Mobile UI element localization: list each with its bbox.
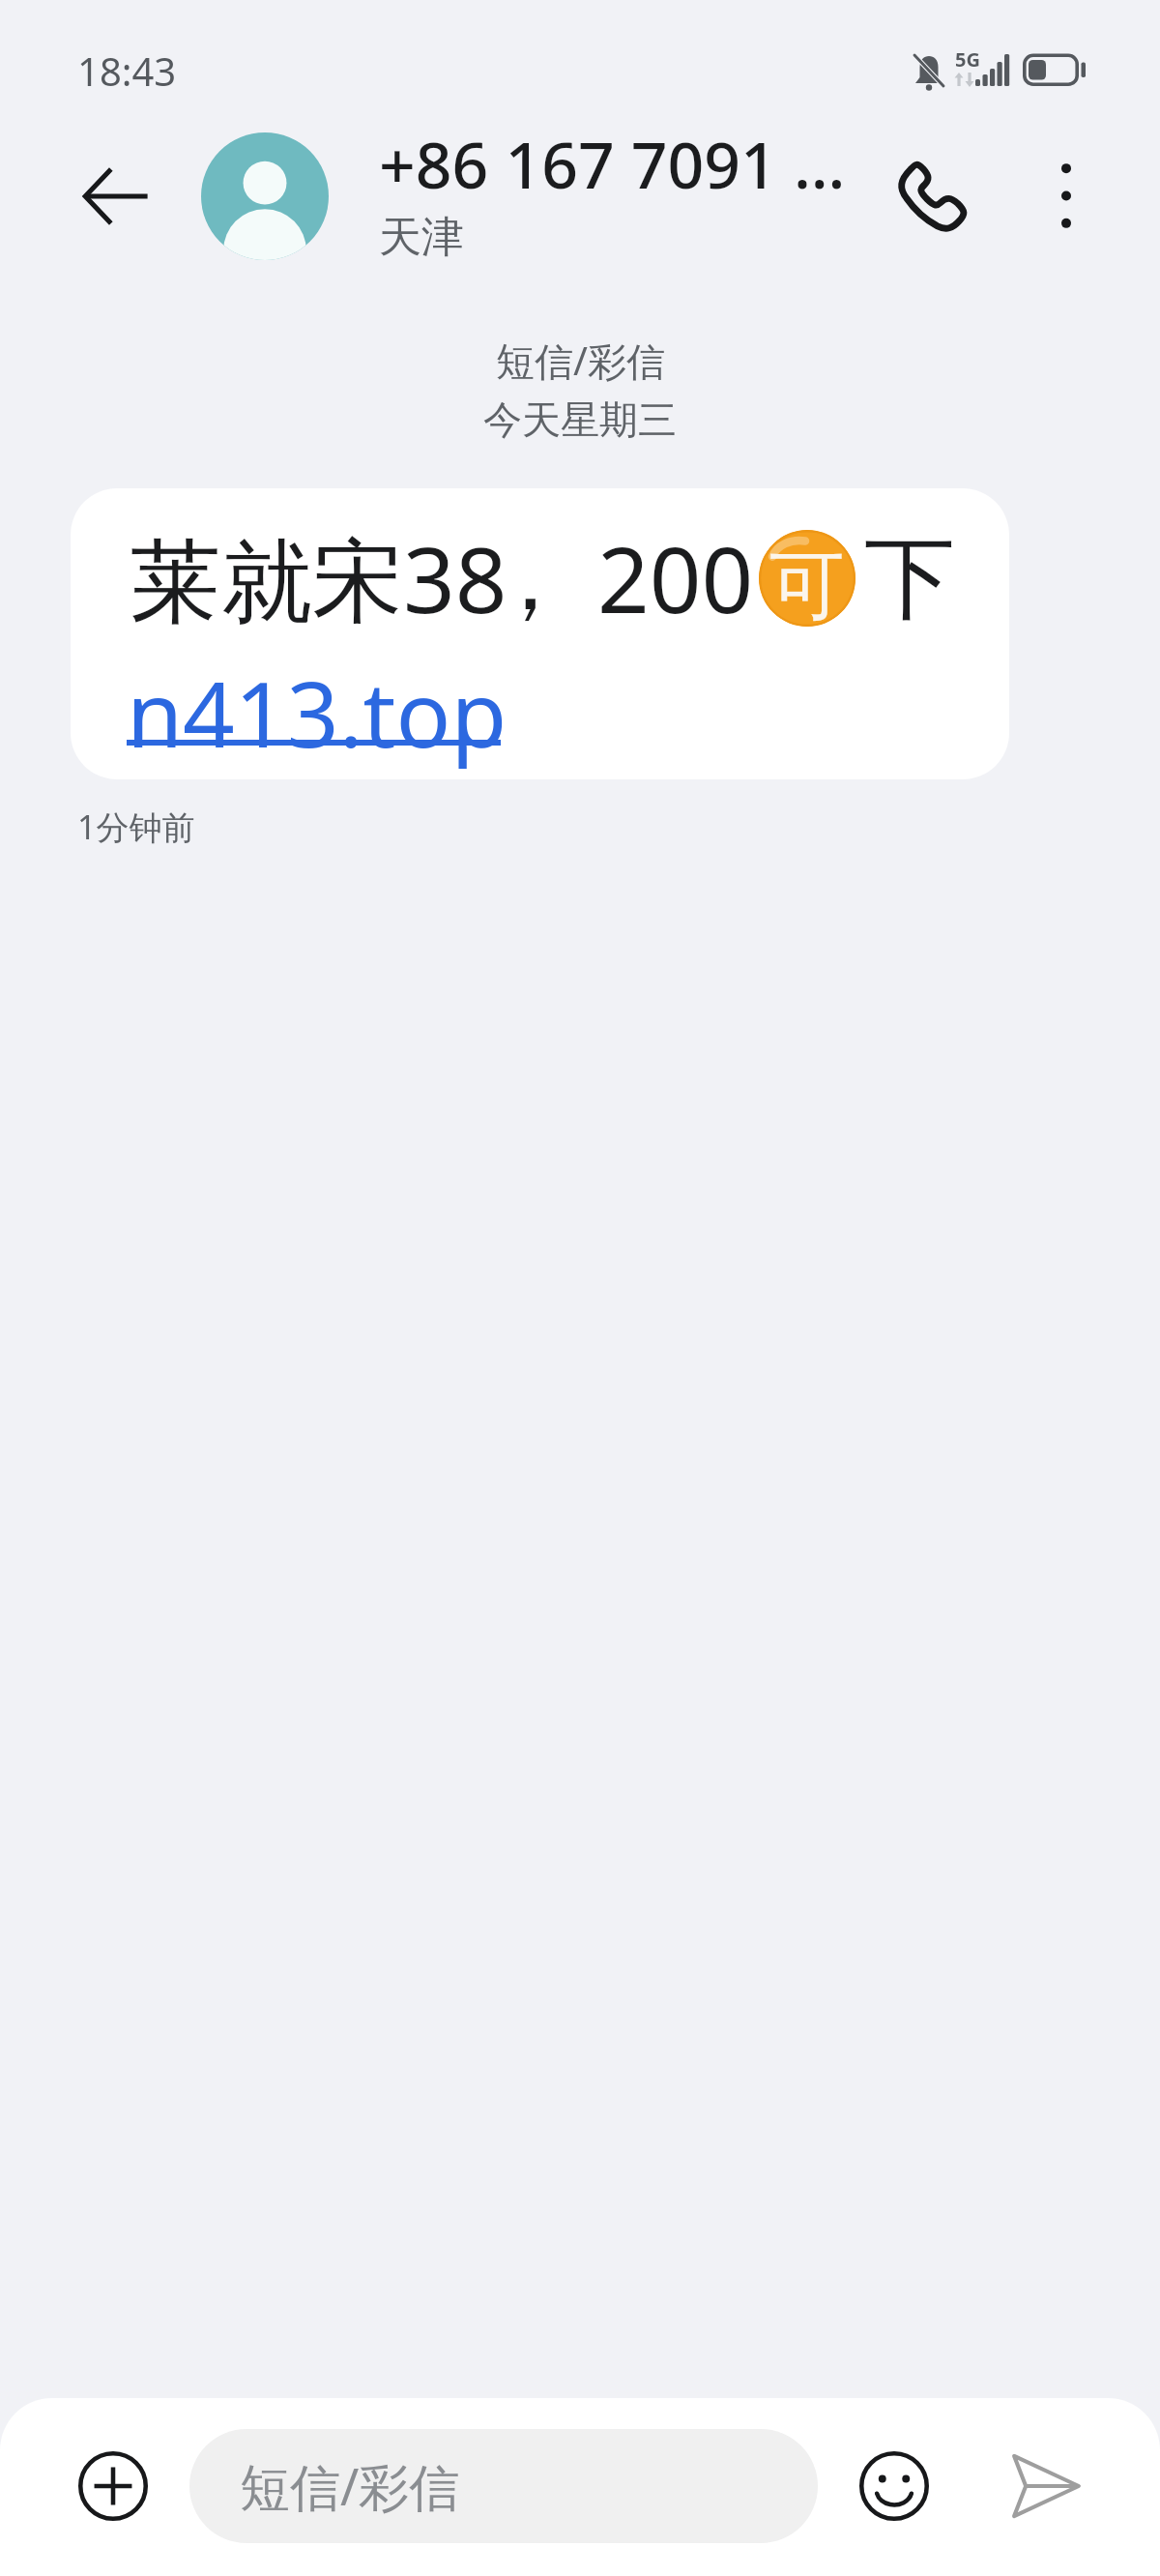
button[interactable]: +86 167 7091 … bbox=[379, 120, 862, 264]
staticText: 短信/彩信 bbox=[496, 334, 665, 387]
staticText: +86 167 7091 … bbox=[379, 120, 846, 207]
button[interactable]: 短信/彩信 bbox=[189, 2429, 818, 2543]
button[interactable]: More options bbox=[1036, 145, 1096, 247]
staticText: ， bbox=[484, 521, 575, 635]
staticText: 今天星期三 bbox=[483, 395, 677, 444]
button[interactable]: Back bbox=[81, 162, 149, 230]
button[interactable]: Send bbox=[998, 2438, 1094, 2534]
button[interactable]: Contact avatar bbox=[201, 132, 329, 260]
staticText: 下 bbox=[864, 521, 955, 635]
staticText: 18:43 bbox=[77, 44, 177, 97]
button[interactable]: Add attachment bbox=[65, 2438, 161, 2534]
staticText: 1分钟前 bbox=[77, 805, 195, 849]
staticText: 短信/彩信 bbox=[240, 2451, 460, 2520]
button[interactable]: Emoji bbox=[846, 2438, 942, 2534]
staticText: 天津 bbox=[379, 211, 464, 264]
staticText: 可 bbox=[769, 539, 845, 627]
button[interactable]: 莱就宋38 bbox=[71, 488, 1009, 779]
staticText: 5G bbox=[955, 46, 980, 73]
staticText: n413.top bbox=[127, 651, 507, 775]
staticText: 莱就宋38 bbox=[130, 516, 507, 640]
button[interactable]: Call bbox=[892, 161, 968, 236]
staticText: 200 bbox=[597, 516, 754, 640]
